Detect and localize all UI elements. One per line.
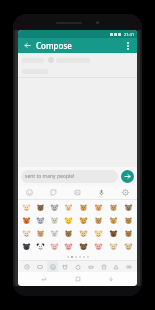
button[interactable]: Travel	[85, 261, 96, 272]
button[interactable]: Emoji	[24, 187, 35, 198]
button[interactable]: Recents	[36, 272, 52, 286]
staticText: 21:31	[124, 32, 135, 37]
button[interactable]	[121, 240, 136, 253]
button[interactable]: Settings	[120, 187, 131, 198]
button[interactable]	[33, 201, 47, 214]
button[interactable]	[76, 214, 91, 227]
button[interactable]	[47, 214, 61, 227]
button[interactable]	[76, 201, 91, 214]
button[interactable]	[19, 214, 33, 227]
button[interactable]: Food	[72, 261, 83, 272]
button[interactable]	[61, 214, 76, 227]
button[interactable]: Flags	[123, 261, 134, 272]
button[interactable]: Home	[70, 272, 86, 286]
button[interactable]	[61, 240, 76, 253]
button[interactable]	[61, 227, 76, 240]
button[interactable]: Send	[121, 170, 134, 183]
button[interactable]: sent to many people!	[21, 170, 118, 183]
button[interactable]	[22, 56, 133, 64]
button[interactable]: Symbols	[110, 261, 121, 272]
button[interactable]: More options	[122, 40, 133, 51]
button[interactable]: GIF	[72, 187, 83, 198]
button[interactable]	[47, 240, 61, 253]
button[interactable]	[76, 227, 91, 240]
button[interactable]: Back	[103, 272, 119, 286]
button[interactable]	[121, 227, 136, 240]
button[interactable]	[19, 227, 33, 240]
button[interactable]	[47, 201, 61, 214]
button[interactable]	[91, 201, 106, 214]
button[interactable]	[33, 214, 47, 227]
button[interactable]: Voice input	[96, 187, 107, 198]
button[interactable]	[106, 214, 121, 227]
button[interactable]	[106, 201, 121, 214]
button[interactable]	[121, 201, 136, 214]
button[interactable]: Keyboard	[34, 261, 45, 272]
button[interactable]: Objects	[98, 261, 109, 272]
button[interactable]	[76, 240, 91, 253]
button[interactable]: Back	[22, 40, 33, 51]
button[interactable]	[19, 201, 33, 214]
button[interactable]	[19, 240, 33, 253]
button[interactable]	[91, 227, 106, 240]
button[interactable]	[91, 214, 106, 227]
button[interactable]	[33, 240, 47, 253]
button[interactable]: Sticker	[48, 187, 59, 198]
button[interactable]: Recent	[21, 261, 32, 272]
button[interactable]	[61, 201, 76, 214]
button[interactable]: Smileys	[47, 261, 58, 272]
button[interactable]	[22, 67, 133, 75]
button[interactable]	[106, 227, 121, 240]
button[interactable]	[91, 240, 106, 253]
staticText: Compose	[36, 40, 72, 51]
button[interactable]: Animals	[59, 261, 70, 272]
button[interactable]	[106, 240, 121, 253]
button[interactable]	[47, 227, 61, 240]
staticText: sent to many people!	[25, 173, 75, 180]
button[interactable]	[121, 214, 136, 227]
button[interactable]	[33, 227, 47, 240]
